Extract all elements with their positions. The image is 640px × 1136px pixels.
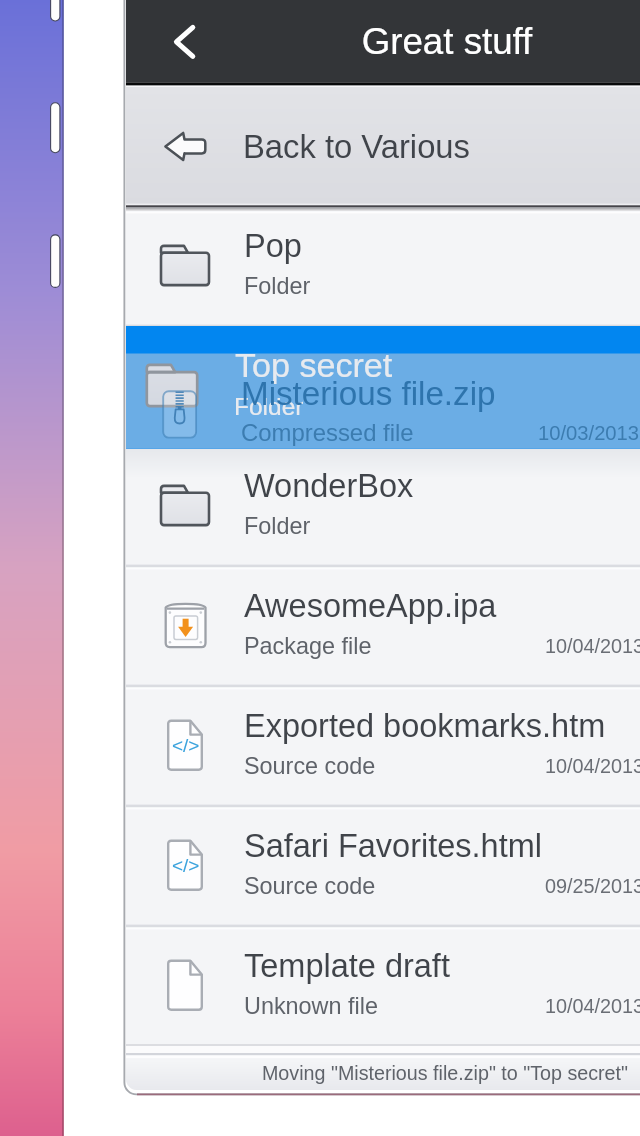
staticText: Exported bookmarks.htm bbox=[244, 708, 640, 744]
button[interactable] bbox=[126, 326, 640, 446]
staticText: Folder bbox=[244, 273, 640, 299]
staticText: AwesomeApp.ipa bbox=[244, 588, 640, 624]
button[interactable] bbox=[126, 806, 640, 926]
staticText: Folder bbox=[234, 393, 640, 420]
button[interactable] bbox=[126, 686, 640, 806]
staticText: Pop bbox=[244, 228, 640, 264]
button[interactable] bbox=[126, 926, 640, 1046]
staticText: 10/04/2013 bbox=[545, 995, 640, 1017]
staticText: Template draft bbox=[244, 948, 640, 984]
button[interactable]: Back bbox=[156, 6, 228, 78]
staticText: Top secret bbox=[235, 346, 640, 384]
staticText: 10/04/2013 bbox=[545, 755, 640, 777]
staticText: Great stuff bbox=[227, 21, 640, 62]
staticText: Source code bbox=[244, 873, 640, 899]
staticText: </> bbox=[172, 735, 232, 756]
staticText: Compressed file bbox=[241, 419, 640, 446]
staticText: Misterious file.zip bbox=[241, 375, 640, 412]
button[interactable] bbox=[126, 206, 640, 326]
staticText: Back to Various bbox=[243, 128, 640, 165]
button[interactable] bbox=[126, 87, 640, 205]
staticText: 09/25/2013 bbox=[545, 875, 640, 897]
staticText: </> bbox=[172, 855, 232, 876]
staticText: Folder bbox=[244, 513, 640, 539]
staticText: WonderBox bbox=[244, 468, 640, 504]
button[interactable] bbox=[126, 446, 640, 566]
staticText: Unknown file bbox=[244, 993, 640, 1019]
button[interactable] bbox=[126, 566, 640, 686]
staticText: Moving "Misterious file.zip" to "Top sec… bbox=[195, 1062, 640, 1084]
staticText: Source code bbox=[244, 753, 640, 779]
staticText: 10/03/2013 bbox=[538, 422, 640, 445]
staticText: Safari Favorites.html bbox=[244, 828, 640, 864]
staticText: 10/04/2013 bbox=[545, 635, 640, 657]
staticText: Package file bbox=[244, 633, 640, 659]
